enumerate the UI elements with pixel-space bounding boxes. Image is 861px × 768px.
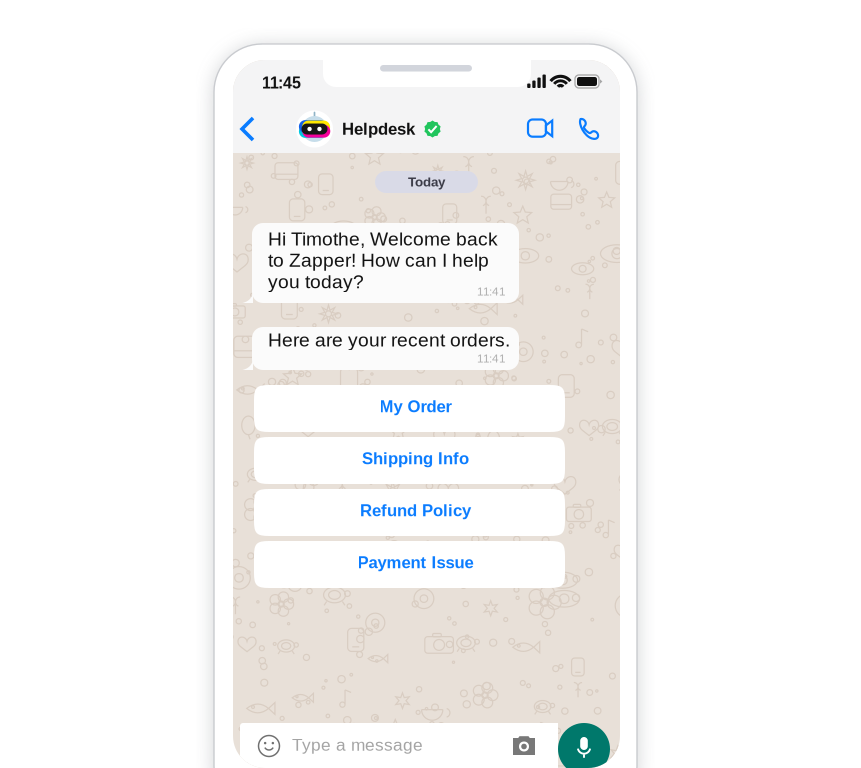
staticText: Hi Timothe, Welcome back to Zapper! How … <box>268 228 498 292</box>
staticText: Refund Policy <box>360 501 471 520</box>
button[interactable]: Voice call <box>567 105 611 153</box>
button[interactable]: Video call <box>517 105 563 153</box>
button[interactable]: Back <box>234 105 278 153</box>
staticText: Type a message <box>292 735 423 754</box>
button[interactable]: Shipping Info <box>254 437 565 484</box>
staticText: Today <box>408 175 445 189</box>
staticText: Here are your recent orders. <box>268 329 510 350</box>
button[interactable]: Refund Policy <box>254 489 565 536</box>
button[interactable]: My Order <box>254 385 565 432</box>
button[interactable]: Helpdesk <box>296 105 441 153</box>
button[interactable]: Payment Issue <box>254 541 565 588</box>
button[interactable]: Record voice message <box>558 723 610 768</box>
staticText: Payment Issue <box>357 553 473 572</box>
staticText: Shipping Info <box>362 449 469 468</box>
staticText: 11:41 <box>477 352 506 365</box>
button[interactable]: Today <box>375 171 478 193</box>
staticText: My Order <box>379 397 451 416</box>
staticText: 11:41 <box>477 285 506 298</box>
staticText: Helpdesk <box>342 120 415 138</box>
staticText: 11:45 <box>262 74 301 92</box>
